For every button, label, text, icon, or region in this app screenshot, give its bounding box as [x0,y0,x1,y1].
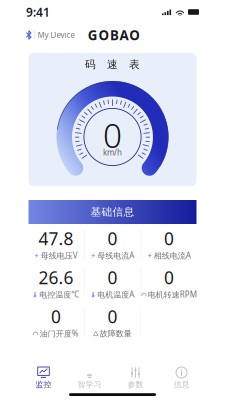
staticText: 参数 [127,380,143,390]
button[interactable]: 监控 [20,361,66,389]
staticText: My Device [38,30,76,40]
staticText: 监控 [35,380,51,390]
staticText: 码 速 表 [85,58,140,71]
staticText: 信息 [173,380,189,390]
staticText: 47.8 [38,227,73,250]
staticText: 0 [51,305,61,328]
button[interactable]: 参数 [112,361,158,389]
staticText: 26.6 [38,266,73,289]
staticText: 0 [107,227,117,250]
staticText: 相线电流A [154,250,191,261]
staticText: 0 [103,113,122,157]
staticText: 电机转速RPM [148,289,197,300]
staticText: 0 [164,227,174,250]
staticText: 0 [164,266,174,289]
staticText: 电机温度A [97,289,134,300]
staticText: 9:41 [26,4,50,20]
staticText: 油门开度% [40,328,79,339]
staticText: km/h [103,147,122,158]
staticText: 电控温度°C [39,289,79,300]
staticText: 母线电流A [97,250,134,261]
staticText: GOBAO [88,26,140,44]
button[interactable]: 智学习 [66,361,112,389]
staticText: 0 [107,305,117,328]
button[interactable]: 信息 [158,361,204,389]
button[interactable]: My Device [26,30,76,40]
staticText: 基础信息 [90,205,134,218]
staticText: 母线电压V [41,250,78,261]
staticText: 0 [107,266,117,289]
staticText: 故障数量 [100,329,132,338]
staticText: 智学习 [77,380,101,390]
